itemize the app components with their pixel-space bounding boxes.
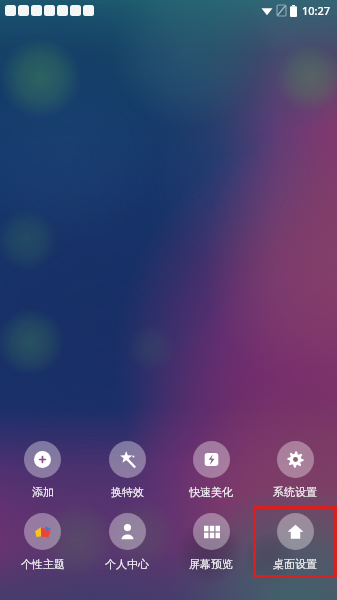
button[interactable]: 系统设置	[253, 434, 337, 506]
button[interactable]: 个性主题	[0, 506, 85, 578]
staticText: 换特效	[111, 485, 144, 499]
button[interactable]: 屏幕预览	[169, 506, 253, 578]
button[interactable]: 添加	[0, 434, 85, 506]
staticText: 添加	[32, 485, 54, 499]
staticText: 桌面设置	[273, 557, 317, 571]
staticText: 系统设置	[273, 485, 317, 499]
button[interactable]: 换特效	[85, 434, 169, 506]
staticText: 屏幕预览	[189, 557, 233, 571]
button[interactable]: 个人中心	[85, 506, 169, 578]
button[interactable]: 桌面设置	[253, 506, 337, 578]
button[interactable]: 快速美化	[169, 434, 253, 506]
staticText: 10:27	[302, 3, 331, 18]
staticText: 快速美化	[189, 485, 233, 499]
staticText: 个人中心	[105, 557, 149, 571]
staticText: 个性主题	[21, 557, 65, 571]
